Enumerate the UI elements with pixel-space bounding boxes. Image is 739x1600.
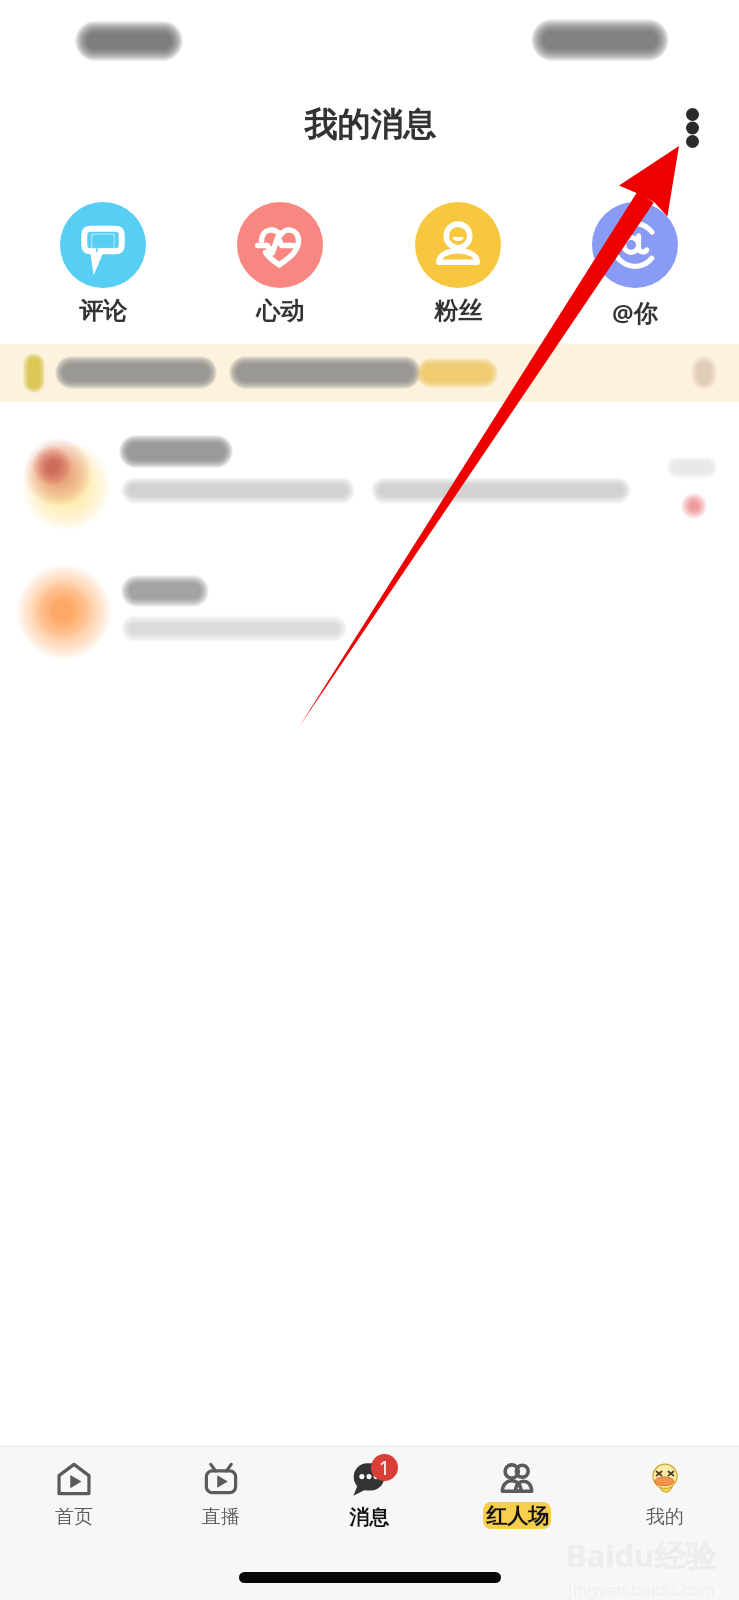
- staticText: 粉丝: [434, 296, 482, 326]
- button[interactable]: @你: [592, 202, 678, 332]
- button[interactable]: 粉丝: [415, 202, 501, 332]
- staticText: 直播: [202, 1505, 240, 1529]
- button[interactable]: 评论: [60, 202, 146, 332]
- button[interactable]: 1: [295, 1462, 443, 1542]
- button[interactable]: 直播: [147, 1462, 295, 1542]
- button[interactable]: 心动: [237, 202, 323, 332]
- staticText: 我的: [646, 1505, 684, 1529]
- staticText: 我的消息: [304, 104, 436, 146]
- staticText: 首页: [55, 1505, 93, 1529]
- button[interactable]: 红人场: [443, 1462, 591, 1542]
- button[interactable]: 首页: [0, 1462, 147, 1542]
- staticText: 消息: [349, 1505, 389, 1530]
- staticText: 红人场: [486, 1503, 549, 1529]
- staticText: 评论: [79, 296, 127, 326]
- staticText: 1: [379, 1455, 390, 1481]
- button[interactable]: [0, 344, 739, 402]
- button[interactable]: More options: [667, 103, 717, 153]
- staticText: 心动: [256, 296, 304, 326]
- button[interactable]: 我的: [591, 1462, 739, 1542]
- staticText: @你: [612, 296, 658, 329]
- staticText: Baidu经验: [566, 1534, 717, 1576]
